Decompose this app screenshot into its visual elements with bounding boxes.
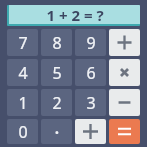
button[interactable]: Minus xyxy=(109,89,140,116)
staticText: 6 xyxy=(86,62,96,84)
button[interactable]: 1 + 2 = ? xyxy=(7,5,140,26)
staticText: 2 xyxy=(52,92,62,114)
button[interactable]: 4 xyxy=(7,59,38,86)
staticText: 8 xyxy=(52,32,62,54)
staticText: 1 + 2 = ? xyxy=(46,5,104,24)
staticText: 3 xyxy=(86,92,96,114)
staticText: 5 xyxy=(52,62,62,84)
staticText: 4 xyxy=(18,62,28,84)
button[interactable]: 7 xyxy=(7,29,38,56)
button[interactable]: 5 xyxy=(41,59,72,86)
button[interactable]: 8 xyxy=(41,29,72,56)
button[interactable]: Multiply xyxy=(109,59,140,86)
staticText: 9 xyxy=(86,32,96,54)
button[interactable]: 1 xyxy=(7,89,38,116)
button[interactable]: Equals xyxy=(109,119,140,144)
button[interactable]: 3 xyxy=(75,89,106,116)
button[interactable]: · xyxy=(41,119,72,144)
staticText: · xyxy=(54,119,60,144)
button[interactable]: Plus xyxy=(75,119,106,144)
button[interactable]: 9 xyxy=(75,29,106,56)
staticText: 7 xyxy=(18,32,28,54)
button[interactable]: Plus xyxy=(109,29,140,56)
button[interactable]: 2 xyxy=(41,89,72,116)
button[interactable]: 6 xyxy=(75,59,106,86)
staticText: 0 xyxy=(18,121,28,143)
button[interactable]: 0 xyxy=(7,119,38,144)
staticText: 1 xyxy=(18,92,28,114)
